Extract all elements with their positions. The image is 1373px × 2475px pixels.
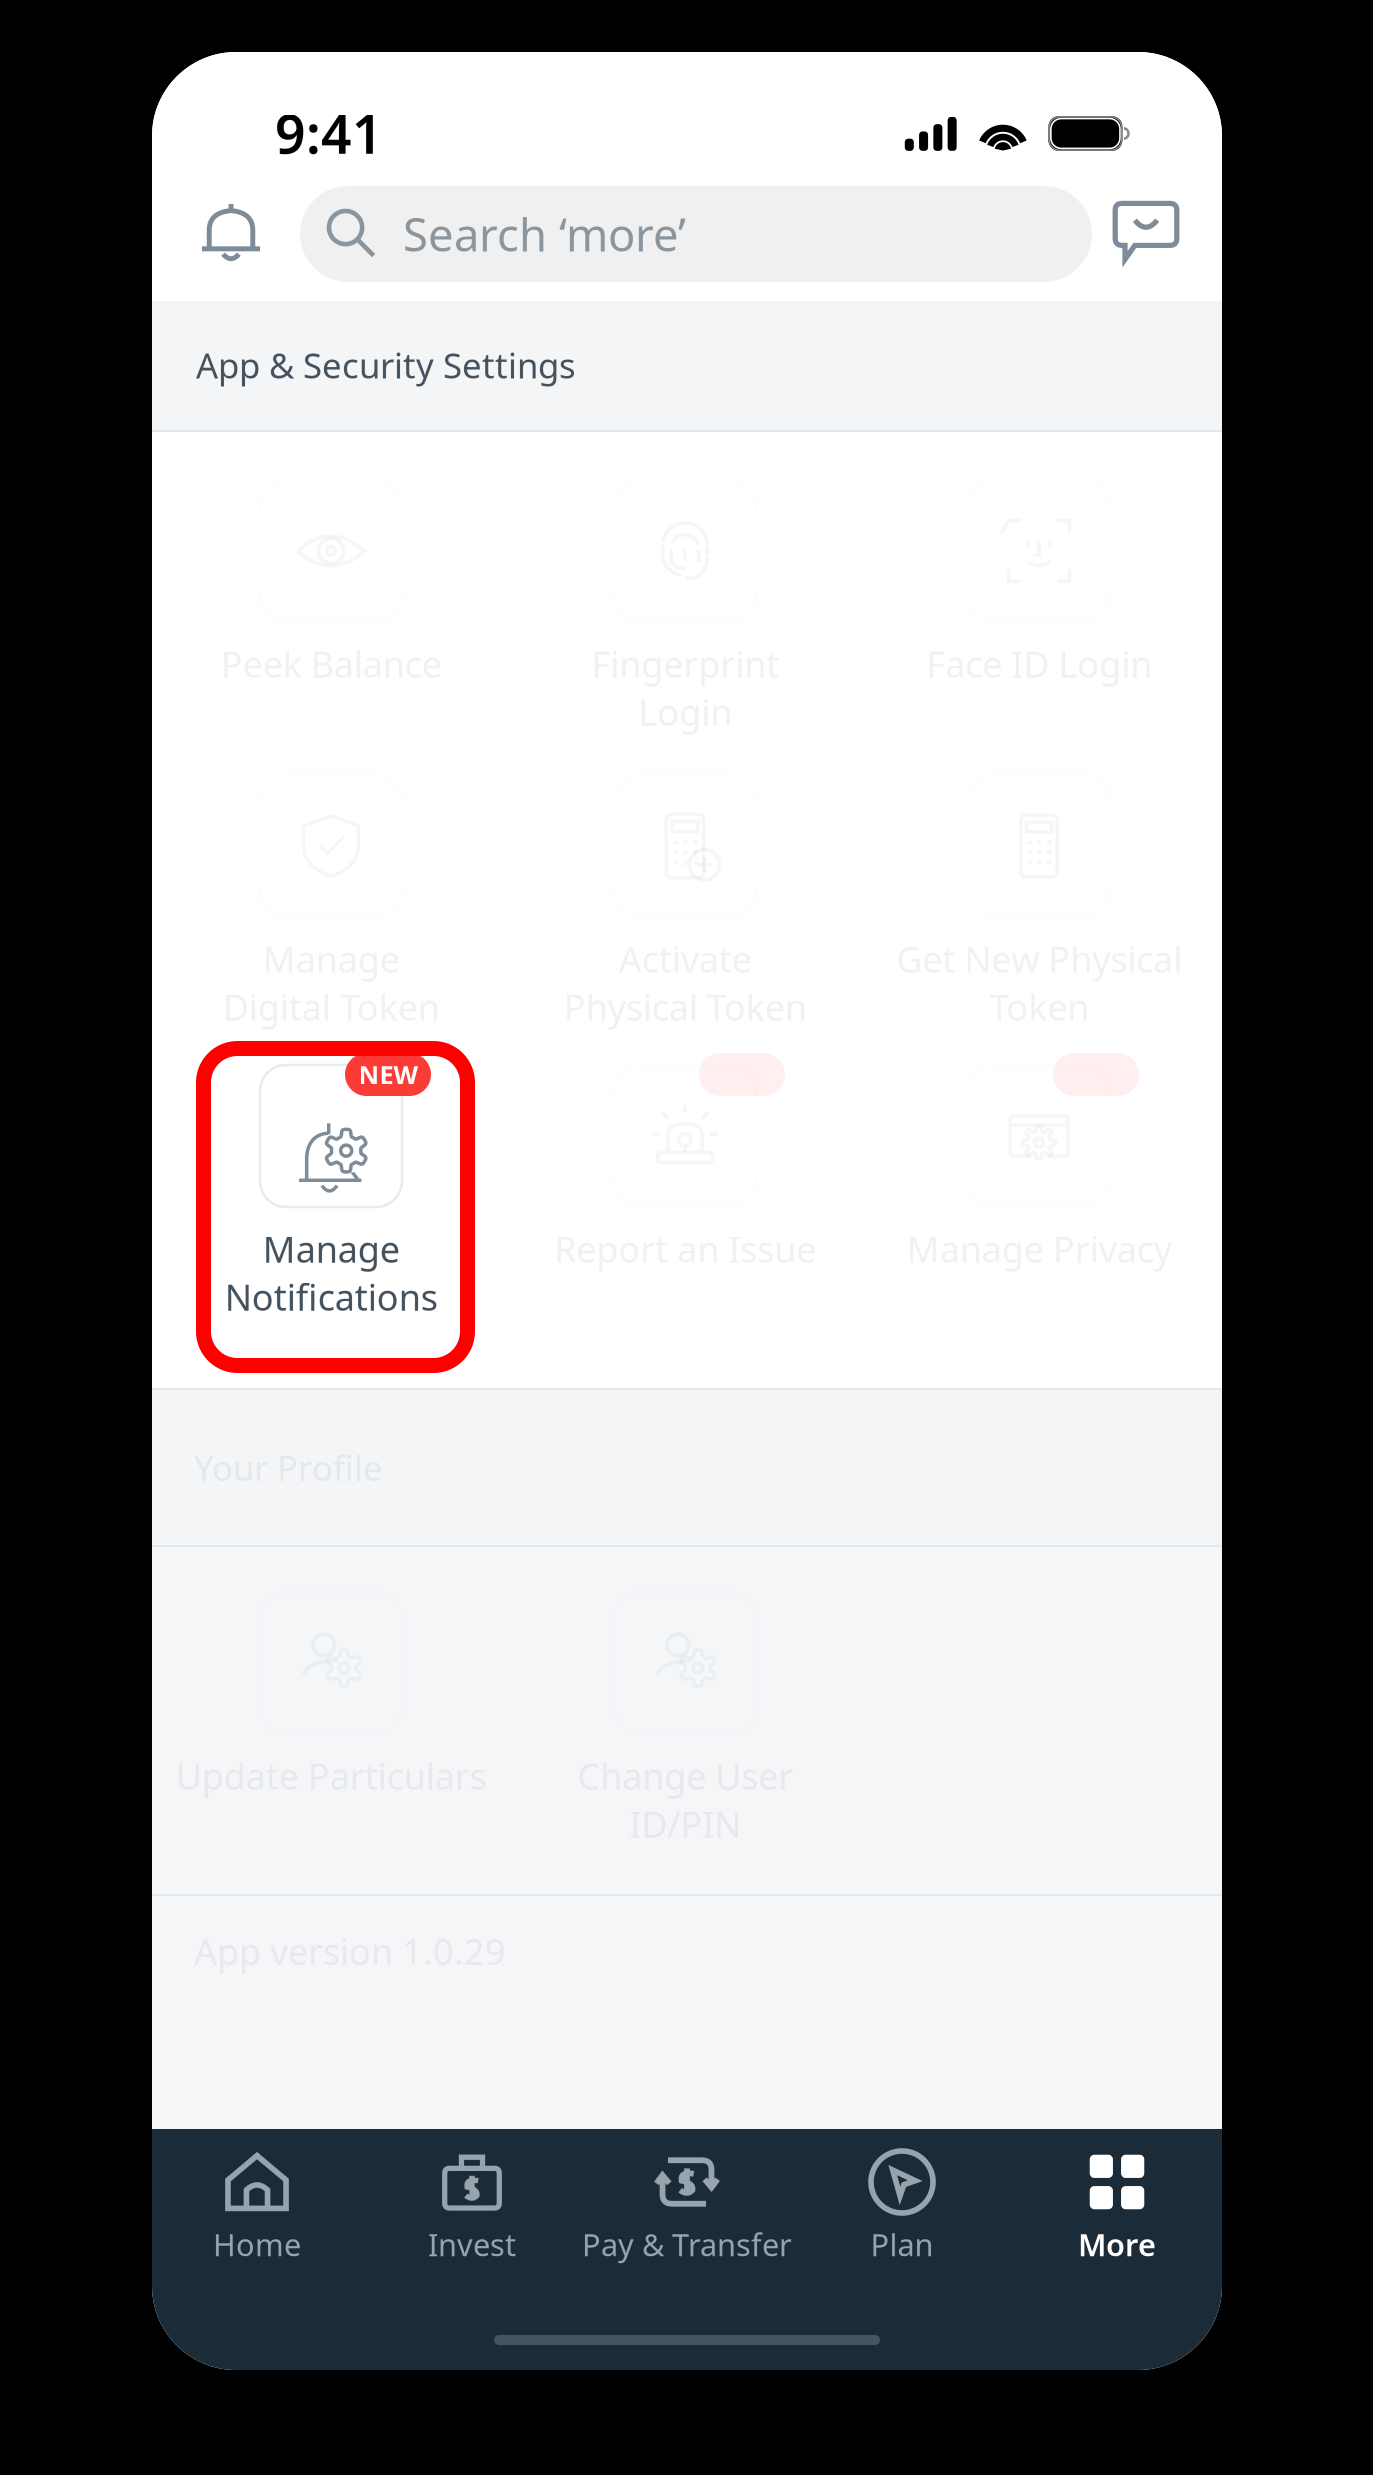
staticText: NEW xyxy=(358,1058,417,1091)
staticText: Pay & Transfer xyxy=(582,2224,792,2265)
button[interactable]: NEW xyxy=(509,1065,861,1315)
staticText: Face ID Login xyxy=(926,640,1152,688)
staticText: Manage Notifications xyxy=(224,1225,437,1321)
button[interactable]: Pay & Transfer xyxy=(579,2151,794,2281)
staticText: Manage Digital Token xyxy=(222,935,439,1031)
staticText: Update Particulars xyxy=(175,1752,486,1800)
staticText: Fingerprint Login xyxy=(591,640,779,736)
staticText: Change User ID/PIN xyxy=(577,1752,793,1848)
staticText: Get New Physical Token xyxy=(896,935,1182,1031)
staticText: Plan xyxy=(870,2224,933,2265)
staticText: App & Security Settings xyxy=(196,342,576,388)
staticText: More xyxy=(1078,2224,1156,2265)
button[interactable]: Invest xyxy=(364,2151,579,2281)
staticText: Invest xyxy=(428,2224,516,2265)
button[interactable]: Plan xyxy=(794,2151,1009,2281)
staticText: App version 1.0.29 xyxy=(194,1927,506,1975)
button[interactable]: Chat xyxy=(1098,178,1194,282)
staticText: Peek Balance xyxy=(220,640,441,688)
staticText: Report an Issue xyxy=(554,1225,816,1273)
staticText: Home xyxy=(213,2224,301,2265)
staticText: Manage Privacy xyxy=(906,1225,1171,1273)
staticText: Your Profile xyxy=(194,1444,383,1490)
button[interactable]: Home xyxy=(149,2151,364,2281)
staticText: 9:41 xyxy=(275,98,383,168)
button[interactable]: Notifications xyxy=(181,181,281,285)
button[interactable]: NEW xyxy=(155,1065,507,1315)
staticText: Search ‘more’ xyxy=(403,204,686,264)
button[interactable]: Search ‘more’ xyxy=(300,186,1092,282)
staticText: Activate Physical Token xyxy=(563,935,806,1031)
button[interactable]: NEW xyxy=(863,1065,1215,1315)
button[interactable]: More xyxy=(1009,2151,1224,2281)
